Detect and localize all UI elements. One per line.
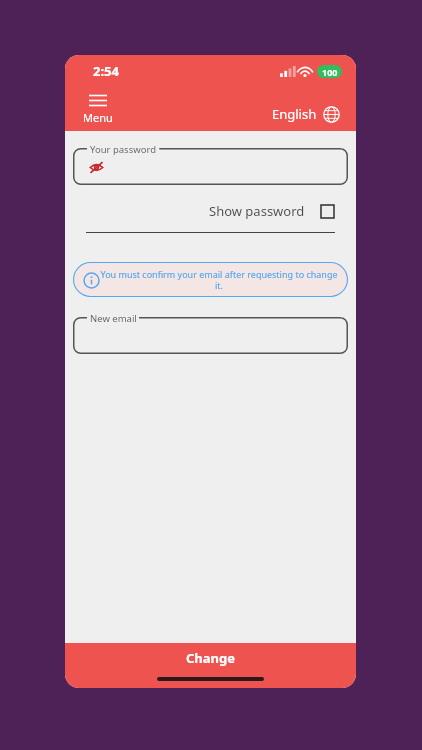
staticText: Menu — [83, 110, 113, 125]
staticText: 2:54 — [93, 62, 119, 80]
button[interactable]: English — [268, 103, 344, 125]
staticText: Your password — [90, 143, 156, 156]
button[interactable]: Change — [65, 643, 356, 673]
button[interactable]: You must confirm your email after reques… — [73, 262, 348, 297]
button[interactable]: Your password — [73, 148, 348, 185]
button[interactable]: Toggle password visibility — [86, 157, 106, 177]
button[interactable]: Show password — [65, 202, 334, 220]
other: Change language — [323, 106, 340, 123]
button[interactable]: New email — [73, 317, 348, 354]
staticText: Change — [186, 649, 236, 667]
staticText: English — [272, 105, 317, 123]
staticText: Show password — [209, 202, 305, 220]
staticText: You must confirm your email after reques… — [100, 268, 338, 292]
staticText: 100 — [322, 66, 338, 78]
button[interactable]: Menu — [77, 92, 119, 127]
staticText: New email — [90, 312, 137, 325]
